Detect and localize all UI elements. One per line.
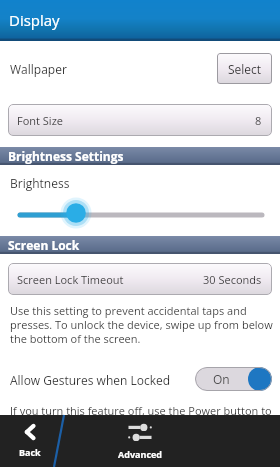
button[interactable]: Advanced [80, 415, 200, 467]
button[interactable]: Font Size [8, 104, 272, 136]
staticText: On [213, 371, 230, 387]
button[interactable]: Select [217, 53, 272, 84]
staticText: Brightness Settings [8, 148, 124, 164]
staticText: Screen Lock [8, 237, 80, 253]
staticText: Display [9, 10, 60, 30]
staticText: Font Size [17, 113, 63, 128]
button[interactable]: Back [0, 415, 60, 467]
staticText: Use this setting to prevent accidental t… [10, 303, 274, 346]
button[interactable]: Screen Lock Timeout [8, 263, 272, 295]
staticText: Select [228, 61, 262, 77]
staticText: Brightness [10, 175, 70, 191]
staticText: Back [19, 446, 41, 458]
staticText: Allow Gestures when Locked [10, 372, 171, 388]
staticText: If you turn this feature off, use the Po… [10, 403, 272, 418]
staticText: Advanced [118, 448, 163, 460]
staticText: 30 Seconds [203, 272, 262, 287]
staticText: Wallpaper [10, 61, 67, 77]
staticText: Screen Lock Timeout [17, 272, 124, 287]
staticText: 8 [255, 113, 262, 128]
button[interactable]: On [195, 367, 272, 391]
